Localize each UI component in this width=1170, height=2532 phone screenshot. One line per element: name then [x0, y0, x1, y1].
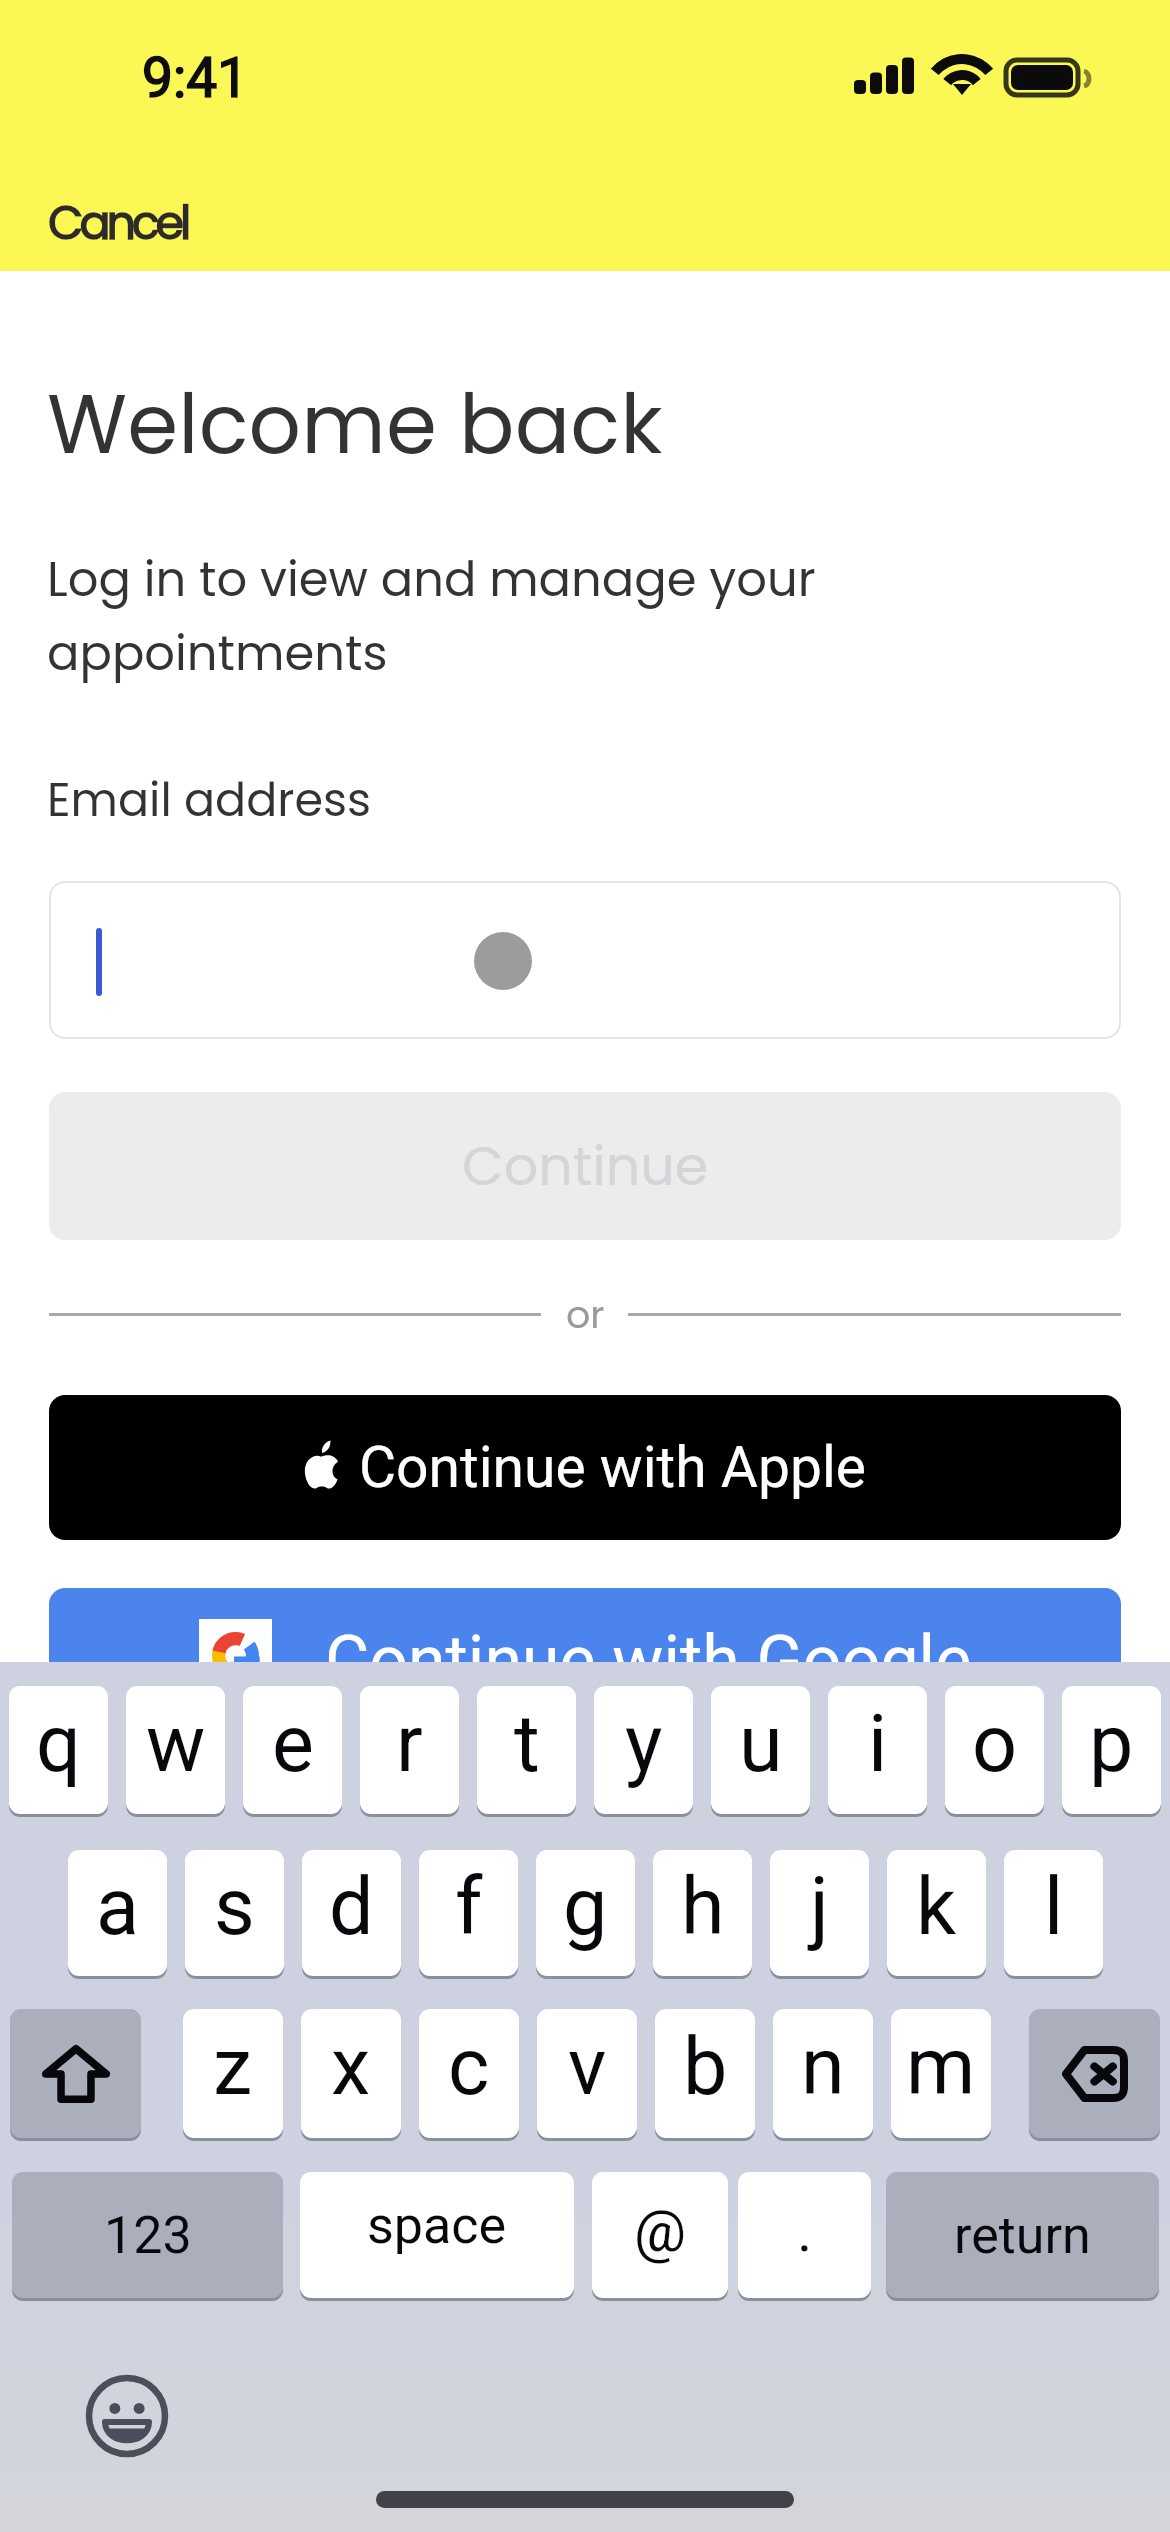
button[interactable]: x — [301, 2009, 401, 2138]
staticText: q — [36, 1698, 81, 1791]
button[interactable]: j — [770, 1850, 869, 1976]
staticText: return — [954, 2205, 1091, 2266]
button[interactable]: o — [945, 1686, 1044, 1814]
button[interactable]: g — [536, 1850, 635, 1976]
staticText: m — [906, 2021, 976, 2114]
staticText: @ — [634, 2197, 687, 2265]
button[interactable]: Continue — [49, 1092, 1121, 1240]
button[interactable]: a — [68, 1850, 167, 1976]
staticText: t — [514, 1698, 540, 1791]
button[interactable]: l — [1004, 1850, 1103, 1976]
staticText: l — [1044, 1861, 1064, 1954]
button[interactable]: i — [828, 1686, 927, 1814]
staticText: Log in to view and manage your appointme… — [47, 546, 1119, 686]
staticText: p — [1089, 1698, 1134, 1791]
staticText: k — [916, 1861, 957, 1954]
staticText: a — [96, 1861, 139, 1954]
staticText: g — [563, 1861, 608, 1954]
staticText: y — [625, 1698, 663, 1791]
button[interactable]: b — [655, 2009, 755, 2138]
button[interactable]: h — [653, 1850, 752, 1976]
button[interactable]: 123 — [12, 2172, 283, 2298]
staticText: s — [214, 1861, 255, 1954]
staticText: Continue with Google — [325, 1621, 972, 1701]
button[interactable]: w — [126, 1686, 225, 1814]
button[interactable]: s — [185, 1850, 284, 1976]
staticText: Continue with Apple — [359, 1434, 867, 1501]
staticText: i — [868, 1698, 888, 1791]
button[interactable]: d — [302, 1850, 401, 1976]
staticText: Email address — [47, 768, 371, 832]
button[interactable]: v — [537, 2009, 637, 2138]
staticText: . — [797, 2197, 813, 2265]
button[interactable]: q — [9, 1686, 108, 1814]
staticText: v — [568, 2021, 607, 2114]
button[interactable]: p — [1062, 1686, 1161, 1814]
staticText: 123 — [104, 2205, 192, 2266]
button[interactable]: e — [243, 1686, 342, 1814]
button[interactable]: . — [738, 2172, 871, 2298]
button[interactable]: f — [419, 1850, 518, 1976]
staticText: c — [448, 2021, 490, 2114]
staticText: Continue — [462, 1128, 709, 1204]
staticText: j — [810, 1861, 829, 1954]
staticText: w — [146, 1698, 206, 1791]
button[interactable]: space — [300, 2172, 574, 2298]
button[interactable]: t — [477, 1686, 576, 1814]
button[interactable]: m — [891, 2009, 991, 2138]
button[interactable]: y — [594, 1686, 693, 1814]
staticText: x — [331, 2021, 371, 2114]
button[interactable]: Cancel — [48, 191, 188, 255]
button[interactable] — [49, 881, 1121, 1039]
staticText: or — [566, 1288, 605, 1341]
button[interactable]: Emoji keyboard — [85, 2374, 169, 2458]
staticText: space — [367, 2195, 507, 2256]
staticText: d — [329, 1861, 374, 1954]
staticText: b — [683, 2021, 728, 2114]
staticText: h — [681, 1861, 725, 1954]
button[interactable]: z — [183, 2009, 283, 2138]
button[interactable]: Continue with Google — [49, 1588, 1121, 1733]
button[interactable]: Backspace — [1029, 2009, 1160, 2138]
staticText: e — [272, 1698, 314, 1791]
button[interactable]: @ — [592, 2172, 728, 2298]
button[interactable]: k — [887, 1850, 986, 1976]
staticText: n — [801, 2021, 845, 2114]
staticText: Welcome back — [47, 367, 663, 482]
button[interactable]: Continue with Apple — [49, 1395, 1121, 1540]
button[interactable]: r — [360, 1686, 459, 1814]
button[interactable]: u — [711, 1686, 810, 1814]
button[interactable]: Shift — [10, 2009, 141, 2138]
staticText: u — [739, 1698, 783, 1791]
staticText: z — [213, 2021, 253, 2114]
staticText: f — [455, 1861, 483, 1954]
staticText: Cancel — [48, 191, 188, 255]
staticText: o — [972, 1698, 1018, 1791]
button[interactable]: c — [419, 2009, 519, 2138]
staticText: 9:41 — [142, 46, 249, 110]
button[interactable]: n — [773, 2009, 873, 2138]
staticText: r — [396, 1698, 423, 1791]
button[interactable]: return — [886, 2172, 1159, 2298]
